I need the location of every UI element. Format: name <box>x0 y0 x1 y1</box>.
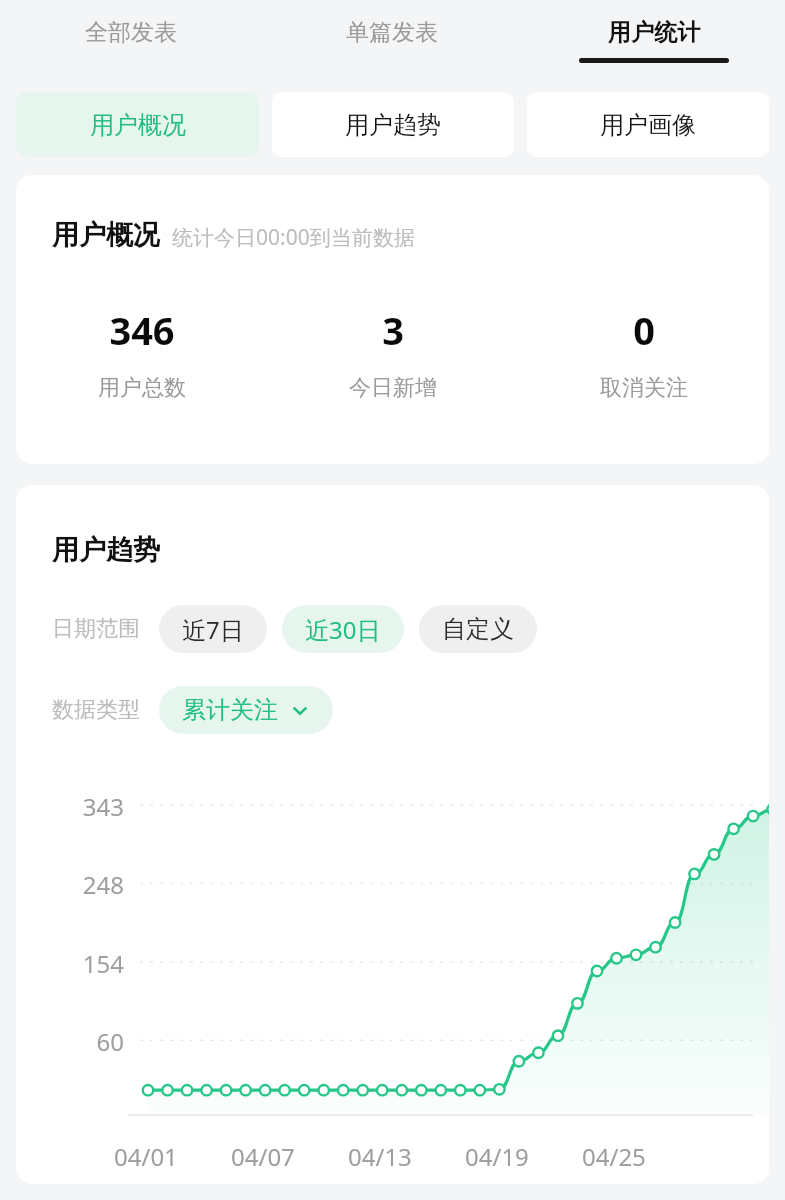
staticText: 用户趋势 <box>345 110 441 140</box>
button[interactable]: 自定义 <box>419 605 537 653</box>
staticText: 近7日 <box>182 613 244 646</box>
button[interactable]: 用户统计 <box>523 0 785 80</box>
staticText: 343 <box>16 790 124 823</box>
button[interactable]: 0 <box>518 304 769 402</box>
staticText: 日期范围 <box>52 615 140 643</box>
staticText: 3 <box>382 304 404 356</box>
staticText: 0 <box>633 304 655 356</box>
staticText: 60 <box>16 1025 124 1058</box>
button[interactable]: 累计关注 <box>159 686 333 734</box>
button[interactable]: 用户概况 <box>16 92 259 157</box>
staticText: 154 <box>16 947 124 980</box>
button[interactable]: 用户趋势 <box>272 92 514 157</box>
staticText: 近30日 <box>305 613 381 646</box>
staticText: 单篇发表 <box>346 18 438 47</box>
staticText: 统计今日00:00到当前数据 <box>172 223 415 252</box>
staticText: 全部发表 <box>85 18 177 47</box>
staticText: 248 <box>16 868 124 901</box>
button[interactable]: 346 <box>16 304 267 402</box>
staticText: 用户概况 <box>90 110 186 140</box>
staticText: 自定义 <box>442 614 514 644</box>
staticText: 用户总数 <box>98 374 186 402</box>
staticText: 用户趋势 <box>52 533 160 567</box>
button[interactable]: 3 <box>267 304 518 402</box>
staticText: 用户概况 <box>52 218 160 252</box>
staticText: 346 <box>109 304 175 356</box>
button[interactable]: 单篇发表 <box>261 0 523 80</box>
staticText: 用户画像 <box>600 110 696 140</box>
staticText: 04/19 <box>465 1140 529 1173</box>
staticText: 04/25 <box>582 1140 646 1173</box>
button[interactable]: 近30日 <box>282 605 404 653</box>
button[interactable]: 用户画像 <box>527 92 769 157</box>
button[interactable]: 近7日 <box>159 605 267 653</box>
staticText: 04/13 <box>348 1140 412 1173</box>
staticText: 04/07 <box>231 1140 295 1173</box>
staticText: 04/01 <box>114 1140 178 1173</box>
staticText: 取消关注 <box>600 374 688 402</box>
staticText: 累计关注 <box>182 695 278 725</box>
staticText: 数据类型 <box>52 696 140 724</box>
other: 展开数据类型 <box>290 700 310 720</box>
staticText: 用户统计 <box>608 18 700 47</box>
staticText: 今日新增 <box>349 374 437 402</box>
button[interactable]: 全部发表 <box>0 0 261 80</box>
